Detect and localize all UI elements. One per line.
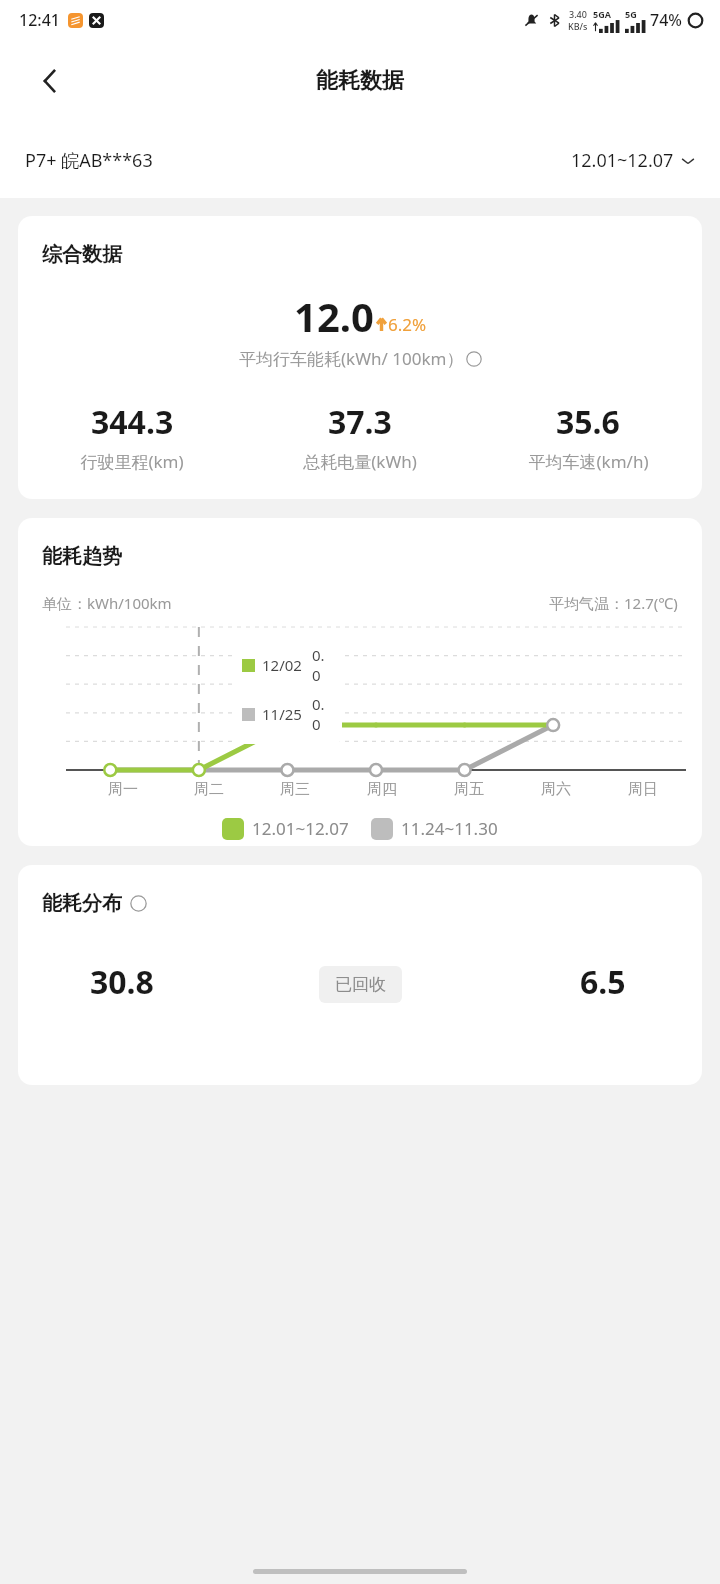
staticText: 周日 [628,780,658,799]
staticText: 344.3 [91,400,174,444]
staticText: 总耗电量(kWh) [303,450,417,473]
staticText: 单位：kWh/100km [42,593,172,613]
staticText: 周五 [454,780,484,799]
staticText: KB/s [568,20,588,32]
staticText: 5GA [593,8,611,20]
staticText: 37.3 [328,400,392,444]
staticText: 12/02 [262,655,302,675]
staticText: 5G [625,8,637,20]
staticText: 3.40 [569,8,587,20]
staticText: 12.01~12.07 [252,817,349,840]
staticText: P7+ 皖AB***63 [25,148,153,173]
staticText: 周六 [541,780,571,799]
staticText: 74% [650,9,682,31]
staticText: 已回收 [335,974,386,995]
staticText: 周二 [194,780,224,799]
staticText: 0.0 [312,645,332,685]
staticText: 0.0 [312,694,332,734]
staticText: 12.0 [294,289,374,343]
staticText: 12:41 [19,9,60,31]
staticText: 周一 [108,780,138,799]
button[interactable]: Back [24,55,76,107]
staticText: 6.2% [388,313,427,336]
staticText: 能耗分布 [42,891,122,916]
staticText: 综合数据 [42,242,122,267]
staticText: 能耗趋势 [42,544,122,569]
staticText: 平均行车能耗(kWh/ 100km） [239,347,464,370]
staticText: 周三 [280,780,310,799]
staticText: 11/25 [262,704,302,724]
staticText: 30.8 [90,960,154,1004]
staticText: 平均气温：12.7(℃) [549,593,678,613]
staticText: 11.24~11.30 [401,817,498,840]
button[interactable]: 12.01~12.07 [571,148,695,173]
staticText: 周四 [367,780,397,799]
staticText: 平均车速(km/h) [528,450,649,473]
staticText: 12.01~12.07 [571,148,674,173]
staticText: 能耗数据 [316,67,404,95]
staticText: 6.5 [580,960,626,1004]
staticText: 35.6 [556,400,620,444]
staticText: 行驶里程(km) [80,450,184,473]
